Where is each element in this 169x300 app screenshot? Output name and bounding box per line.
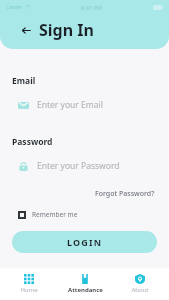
button[interactable]: Back (18, 22, 34, 38)
button[interactable]: LOGIN (12, 231, 157, 253)
button[interactable]: Forgot Password? (93, 188, 157, 200)
button[interactable]: Remember me (12, 208, 82, 221)
staticText: Sign In (39, 19, 94, 41)
staticText: Enter your Password (37, 160, 120, 172)
staticText: About (131, 286, 149, 294)
staticText: Forgot Password? (95, 189, 155, 199)
staticText: 8:47 PM (81, 4, 102, 11)
staticText: Enter your Email (37, 99, 103, 111)
staticText: Remember me (32, 210, 78, 219)
button[interactable]: Attendance (59, 272, 111, 296)
staticText: Home (20, 286, 38, 294)
button[interactable]: Enter your Password (12, 157, 157, 175)
staticText: Email (12, 75, 36, 87)
button[interactable]: Enter your Email (12, 96, 157, 114)
staticText: Carrier (6, 4, 23, 11)
button[interactable]: About (114, 272, 166, 296)
staticText: LOGIN (67, 236, 103, 248)
staticText: Password (12, 136, 53, 148)
button[interactable]: Home (3, 272, 55, 296)
staticText: Attendance (68, 286, 103, 294)
